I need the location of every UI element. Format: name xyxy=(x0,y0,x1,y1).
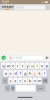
button[interactable]: a xyxy=(4,70,8,76)
button[interactable]: n xyxy=(32,78,37,84)
button[interactable]: m xyxy=(37,78,42,84)
button[interactable]: j xyxy=(32,70,37,76)
staticText: l xyxy=(44,71,45,76)
button[interactable]: return xyxy=(36,85,45,92)
staticText: 9:41 xyxy=(2,0,9,4)
button[interactable]: Type here xyxy=(7,56,44,60)
staticText: 123 xyxy=(6,87,9,89)
button[interactable]: t xyxy=(20,62,25,69)
button[interactable]: Add attachment xyxy=(1,55,6,60)
staticText: Type here xyxy=(9,56,23,59)
staticText: Search xyxy=(16,6,24,9)
staticText: ▪▪▪ xyxy=(41,1,44,3)
button[interactable]: i xyxy=(35,62,39,69)
button[interactable]: z xyxy=(8,78,13,84)
staticText: b xyxy=(29,78,31,83)
button[interactable]: w xyxy=(6,62,10,69)
staticText: + xyxy=(3,55,5,60)
staticText: x xyxy=(14,78,16,83)
staticText: o xyxy=(41,63,43,68)
staticText: e xyxy=(12,63,14,68)
staticText: ⌄ xyxy=(46,6,48,9)
staticText: z xyxy=(9,78,11,83)
staticText: q xyxy=(2,63,4,68)
button[interactable]: Search xyxy=(15,5,45,9)
button[interactable]: c xyxy=(18,78,22,84)
button[interactable]: ⌫ xyxy=(42,78,48,84)
button[interactable]: o xyxy=(40,62,44,69)
button[interactable]: amazon xyxy=(1,5,13,10)
button[interactable]: u xyxy=(30,62,34,69)
button[interactable]: v xyxy=(23,78,27,84)
staticText: return xyxy=(38,87,43,89)
button[interactable]: 123 xyxy=(5,85,10,92)
staticText: p xyxy=(46,63,48,68)
staticText: ☺ xyxy=(11,87,14,90)
staticText: t xyxy=(22,63,23,68)
button[interactable]: ⇧ xyxy=(2,78,8,84)
button[interactable]: r xyxy=(16,62,20,69)
button[interactable]: y xyxy=(25,62,29,69)
button[interactable]: d xyxy=(13,70,17,76)
button[interactable]: s xyxy=(8,70,13,76)
staticText: k xyxy=(38,71,40,76)
staticText: m xyxy=(37,78,41,83)
staticText: n xyxy=(34,78,36,83)
button[interactable]: Menu xyxy=(46,6,48,9)
button[interactable] xyxy=(15,85,35,92)
staticText: v xyxy=(24,78,26,83)
button[interactable]: e xyxy=(11,62,15,69)
staticText: y xyxy=(26,63,28,68)
staticText: a xyxy=(5,71,7,76)
button[interactable]: x xyxy=(13,78,17,84)
staticText: ⇧ xyxy=(4,79,6,82)
staticText: amazon xyxy=(1,5,13,9)
button[interactable]: Send xyxy=(45,56,49,60)
staticText: u xyxy=(31,63,33,68)
staticText: i xyxy=(36,63,37,68)
button[interactable]: q xyxy=(1,62,5,69)
staticText: f xyxy=(20,71,21,76)
staticText: s xyxy=(9,71,11,76)
button[interactable]: f xyxy=(18,70,22,76)
button[interactable]: ☺ xyxy=(11,85,15,92)
staticText: r xyxy=(17,63,19,68)
staticText: j xyxy=(34,71,35,76)
staticText: c xyxy=(19,78,21,83)
button[interactable]: p xyxy=(45,62,49,69)
staticText: g xyxy=(24,71,26,76)
button[interactable]: b xyxy=(28,78,32,84)
button[interactable]: h xyxy=(28,70,32,76)
button[interactable]: l xyxy=(42,70,46,76)
button[interactable]: g xyxy=(23,70,27,76)
staticText: w xyxy=(7,63,10,68)
staticText: d xyxy=(14,71,16,76)
staticText: ⌫ xyxy=(43,79,47,82)
staticText: h xyxy=(29,71,31,76)
button[interactable]: k xyxy=(37,70,41,76)
